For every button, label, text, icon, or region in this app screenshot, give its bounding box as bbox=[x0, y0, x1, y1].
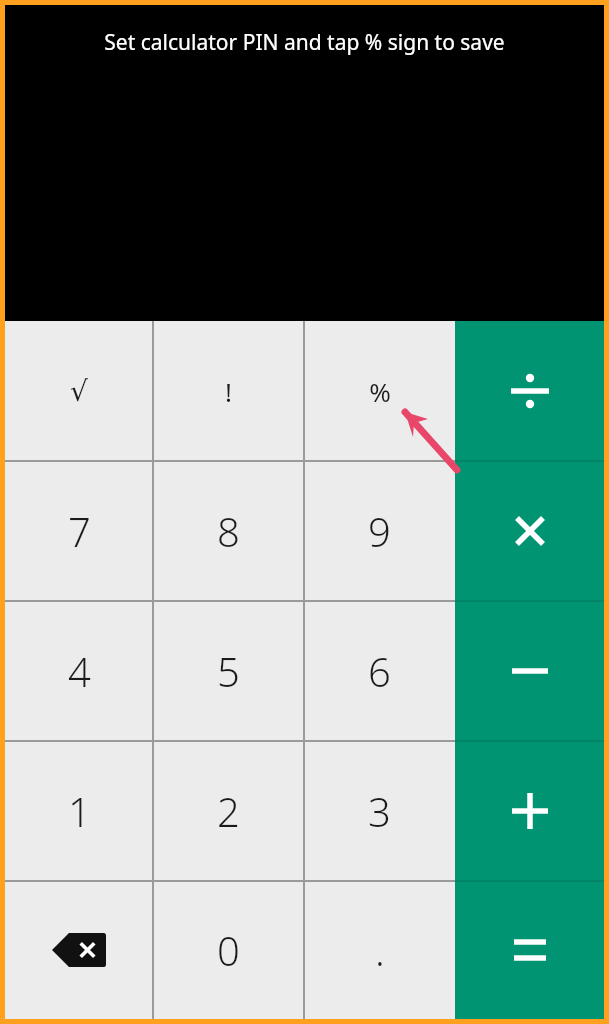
button[interactable]: 6 bbox=[304, 601, 455, 741]
button[interactable]: 4 bbox=[5, 601, 153, 741]
staticText: 9 bbox=[368, 504, 391, 558]
button[interactable]: . bbox=[304, 881, 455, 1019]
staticText: ! bbox=[225, 374, 232, 409]
button[interactable]: Backspace bbox=[5, 881, 153, 1019]
staticText: 7 bbox=[68, 504, 91, 558]
staticText: 2 bbox=[217, 784, 240, 838]
staticText: 4 bbox=[68, 644, 91, 698]
button[interactable]: 9 bbox=[304, 461, 455, 601]
button[interactable]: 0 bbox=[153, 881, 304, 1019]
staticText: 1 bbox=[68, 784, 91, 838]
staticText: Set calculator PIN and tap % sign to sav… bbox=[104, 28, 505, 57]
button[interactable]: Add bbox=[455, 741, 604, 881]
staticText: 0 bbox=[217, 923, 240, 977]
staticText: 5 bbox=[217, 644, 240, 698]
button[interactable]: Multiply bbox=[455, 461, 604, 601]
staticText: 8 bbox=[217, 504, 240, 558]
button[interactable]: Divide bbox=[455, 321, 604, 461]
staticText: . bbox=[375, 923, 385, 977]
staticText: 6 bbox=[368, 644, 391, 698]
staticText: % bbox=[369, 374, 391, 409]
button[interactable]: √ bbox=[5, 321, 153, 461]
button[interactable]: ! bbox=[153, 321, 304, 461]
button[interactable]: Equals bbox=[455, 881, 604, 1019]
button[interactable]: 2 bbox=[153, 741, 304, 881]
button[interactable]: 7 bbox=[5, 461, 153, 601]
staticText: √ bbox=[70, 375, 88, 408]
button[interactable]: 1 bbox=[5, 741, 153, 881]
staticText: 3 bbox=[368, 784, 391, 838]
button[interactable]: % bbox=[304, 321, 455, 461]
button[interactable]: 8 bbox=[153, 461, 304, 601]
button[interactable]: 5 bbox=[153, 601, 304, 741]
button[interactable]: 3 bbox=[304, 741, 455, 881]
button[interactable]: Subtract bbox=[455, 601, 604, 741]
